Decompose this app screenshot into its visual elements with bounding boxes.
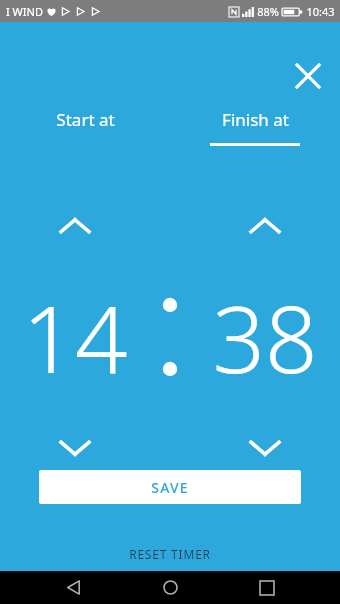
button[interactable]: Home	[146, 571, 194, 604]
staticText: 14	[22, 275, 128, 400]
button[interactable]: Recents	[243, 571, 291, 604]
button[interactable]: RESET TIMER	[111, 537, 229, 571]
button[interactable]: Close	[284, 52, 332, 100]
button[interactable]: Decrease	[47, 420, 103, 476]
button[interactable]: Decrease	[237, 420, 293, 476]
staticText: 38	[212, 275, 318, 400]
staticText: I WIND	[6, 4, 43, 19]
staticText: SAVE	[151, 478, 189, 497]
button[interactable]: Back	[49, 571, 97, 604]
staticText: Start at	[56, 108, 115, 131]
button[interactable]: Increase	[237, 197, 293, 253]
button[interactable]: Finish at	[170, 108, 340, 156]
staticText: 88%	[257, 4, 279, 19]
button[interactable]: SAVE	[39, 470, 301, 504]
staticText: 10:43	[306, 4, 335, 19]
button[interactable]: Start at	[0, 108, 170, 156]
button[interactable]: Increase	[47, 197, 103, 253]
staticText: RESET TIMER	[129, 546, 211, 562]
staticText: Finish at	[222, 108, 289, 131]
